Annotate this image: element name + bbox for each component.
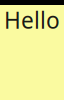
staticText: Hello [4,5,60,35]
